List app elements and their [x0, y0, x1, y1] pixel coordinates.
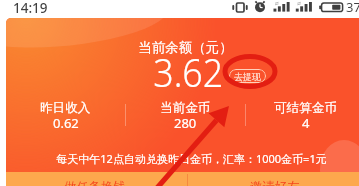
staticText: 当前金币: [160, 100, 211, 116]
staticText: 可结算金币: [274, 100, 337, 116]
staticText: 去提现: [234, 71, 261, 82]
staticText: 37: [346, 0, 359, 16]
other: Status icons: [0, 0, 359, 18]
staticText: 昨日收入: [40, 100, 91, 116]
staticText: 每天中午12点自动兑换昨日金币，汇率：1000金币=1元: [12, 151, 359, 166]
staticText: 0.62: [53, 114, 79, 128]
staticText: 280: [174, 114, 197, 128]
button[interactable]: 当前金币: [126, 100, 245, 130]
staticText: 3.62: [153, 46, 224, 98]
button[interactable]: 可结算金币: [246, 100, 359, 130]
button[interactable]: 去提现: [229, 69, 266, 83]
staticText: 做任务换钱: [64, 179, 126, 186]
button[interactable]: 做任务换钱: [6, 172, 187, 186]
staticText: 4: [302, 114, 310, 128]
staticText: 邀请好友: [250, 179, 300, 186]
button[interactable]: 昨日收入: [6, 100, 125, 130]
staticText: 当前余额（元）: [6, 39, 359, 56]
button[interactable]: 邀请好友: [187, 172, 359, 186]
staticText: 14:19: [13, 0, 48, 17]
